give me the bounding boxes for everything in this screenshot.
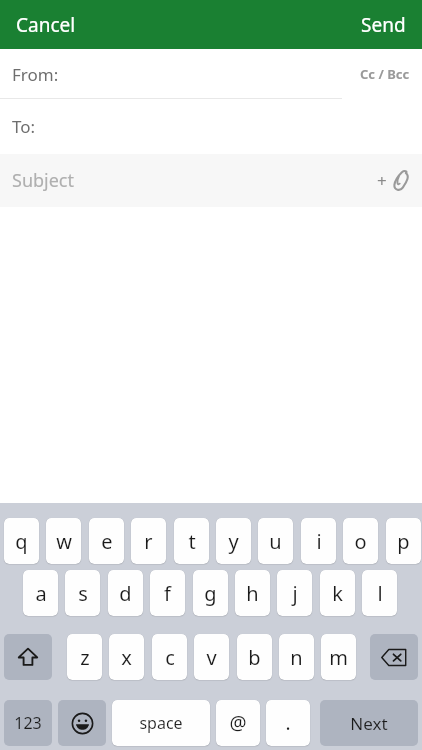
- staticText: o: [354, 528, 367, 555]
- staticText: space: [139, 712, 183, 734]
- button[interactable]: i: [301, 518, 336, 564]
- button[interactable]: 123: [4, 700, 52, 746]
- button[interactable]: s: [65, 570, 100, 616]
- button[interactable]: w: [46, 518, 81, 564]
- button[interactable]: u: [258, 518, 293, 564]
- button[interactable]: Emoji: [58, 700, 106, 746]
- staticText: f: [164, 580, 171, 607]
- staticText: h: [246, 580, 259, 607]
- staticText: Cancel: [16, 12, 76, 38]
- button[interactable]: Cancel: [0, 2, 92, 48]
- staticText: d: [119, 580, 132, 607]
- button[interactable]: y: [216, 518, 251, 564]
- staticText: From:: [12, 63, 59, 86]
- button[interactable]: Cc / Bcc: [348, 57, 422, 91]
- button[interactable]: Shift: [4, 634, 52, 680]
- button[interactable]: h: [235, 570, 270, 616]
- button[interactable]: Add attachment: [367, 163, 422, 198]
- staticText: Cc / Bcc: [360, 65, 410, 83]
- button[interactable]: q: [4, 518, 39, 564]
- button[interactable]: Next: [320, 700, 418, 746]
- button[interactable]: j: [277, 570, 312, 616]
- staticText: b: [248, 644, 261, 671]
- staticText: q: [15, 528, 28, 555]
- button[interactable]: v: [194, 634, 229, 680]
- staticText: Send: [361, 12, 406, 38]
- staticText: t: [188, 528, 196, 555]
- staticText: +: [377, 169, 387, 192]
- staticText: l: [377, 580, 383, 607]
- button[interactable]: f: [150, 570, 185, 616]
- button[interactable]: .: [266, 700, 310, 746]
- staticText: Next: [350, 712, 388, 735]
- staticText: To:: [12, 115, 36, 138]
- button[interactable]: From:: [0, 49, 422, 99]
- staticText: s: [78, 580, 88, 607]
- button[interactable]: l: [362, 570, 397, 616]
- staticText: m: [329, 644, 348, 671]
- button[interactable]: d: [108, 570, 143, 616]
- staticText: @: [229, 710, 247, 736]
- button[interactable]: e: [89, 518, 124, 564]
- button[interactable]: Backspace: [370, 634, 418, 680]
- staticText: k: [332, 580, 343, 607]
- button[interactable]: t: [174, 518, 209, 564]
- staticText: e: [101, 528, 113, 555]
- staticText: w: [56, 528, 72, 555]
- button[interactable]: n: [279, 634, 314, 680]
- button[interactable]: r: [131, 518, 166, 564]
- staticText: Subject: [12, 168, 75, 193]
- staticText: g: [204, 580, 217, 607]
- button[interactable]: k: [320, 570, 355, 616]
- staticText: u: [269, 528, 282, 555]
- staticText: v: [206, 644, 217, 671]
- button[interactable]: z: [67, 634, 102, 680]
- staticText: n: [290, 644, 303, 671]
- button[interactable]: o: [343, 518, 378, 564]
- staticText: i: [316, 528, 322, 555]
- staticText: z: [80, 644, 90, 671]
- button[interactable]: Subject: [0, 154, 422, 207]
- staticText: a: [35, 580, 47, 607]
- staticText: p: [397, 528, 410, 555]
- button[interactable]: space: [112, 700, 210, 746]
- staticText: .: [285, 710, 291, 736]
- button[interactable]: a: [23, 570, 58, 616]
- button[interactable]: To:: [0, 99, 422, 154]
- staticText: r: [144, 528, 153, 555]
- staticText: x: [121, 644, 132, 671]
- button[interactable]: m: [321, 634, 356, 680]
- button[interactable]: b: [237, 634, 272, 680]
- button[interactable]: g: [193, 570, 228, 616]
- staticText: j: [292, 580, 298, 607]
- button[interactable]: c: [152, 634, 187, 680]
- staticText: c: [165, 644, 175, 671]
- button[interactable]: p: [386, 518, 421, 564]
- button[interactable]: Send: [345, 2, 422, 48]
- staticText: 123: [14, 712, 42, 734]
- button[interactable]: x: [109, 634, 144, 680]
- button[interactable]: @: [216, 700, 260, 746]
- staticText: y: [228, 528, 239, 555]
